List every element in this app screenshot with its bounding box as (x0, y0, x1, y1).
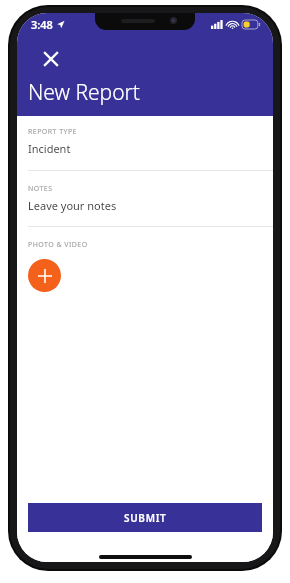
staticText: Leave your notes (28, 198, 117, 213)
staticText: 3:48 (31, 17, 53, 32)
staticText: SUBMIT (124, 511, 167, 525)
staticText: New Report (28, 78, 140, 107)
staticText: REPORT TYPE (28, 127, 77, 137)
button[interactable]: Close (37, 45, 65, 73)
button[interactable]: Add photo or video (28, 259, 61, 292)
button[interactable]: NOTES (17, 184, 273, 226)
staticText: PHOTO & VIDEO (28, 240, 88, 250)
button[interactable]: SUBMIT (28, 503, 262, 532)
staticText: NOTES (28, 184, 53, 194)
button[interactable]: REPORT TYPE (17, 127, 273, 170)
staticText: Incident (28, 141, 71, 156)
